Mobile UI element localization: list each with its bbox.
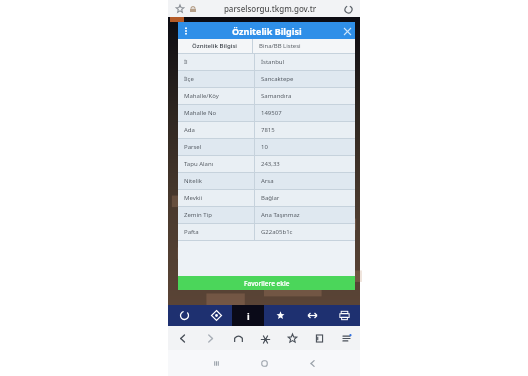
button[interactable]: Tabs — [306, 326, 333, 350]
staticText: Favorilere ekle — [244, 279, 290, 288]
button[interactable]: Menu — [333, 326, 360, 350]
button[interactable]: Bookmarks — [279, 326, 306, 350]
button[interactable]: Site info — [187, 3, 199, 15]
button[interactable]: İlçe — [178, 71, 355, 87]
staticText: Samandıra — [261, 92, 292, 100]
button[interactable]: Bookmark — [173, 2, 187, 16]
button[interactable]: Reload — [341, 2, 355, 16]
button[interactable]: Recents — [192, 350, 240, 376]
button[interactable]: İl — [178, 54, 355, 70]
button[interactable]: Favorites — [264, 305, 296, 326]
staticText: İstanbul — [261, 58, 285, 66]
staticText: i — [247, 310, 250, 322]
staticText: Pafta — [184, 228, 199, 236]
staticText: İl — [184, 58, 188, 66]
staticText: G22a05b1c — [261, 228, 293, 236]
staticText: 149507 — [261, 109, 282, 117]
button[interactable]: parselsorgu.tkgm.gov.tr — [199, 3, 341, 14]
staticText: 243,33 — [261, 160, 280, 168]
staticText: Parsel — [184, 143, 202, 151]
button[interactable]: Parsel — [178, 139, 355, 155]
button[interactable]: Nitelik — [178, 173, 355, 189]
staticText: Arsa — [261, 177, 274, 185]
button[interactable]: Bina/BB Listesi — [253, 39, 355, 53]
button[interactable]: Close — [339, 23, 355, 39]
staticText: Sancaktepe — [261, 75, 294, 83]
staticText: İlçe — [184, 75, 194, 83]
button[interactable]: Extensions — [252, 326, 279, 350]
button[interactable]: Öznitelik Bilgisi — [178, 39, 252, 53]
button[interactable]: Refresh — [168, 305, 200, 326]
staticText: Ada — [184, 126, 195, 134]
button[interactable]: Info — [232, 305, 264, 326]
staticText: Mahalle No — [184, 109, 217, 117]
staticText: Zemin Tip — [184, 211, 212, 219]
staticText: Ana Taşınmaz — [261, 211, 300, 219]
button[interactable]: Tapu Alanı — [178, 156, 355, 172]
staticText: Öznitelik Bilgisi — [192, 42, 238, 50]
staticText: Nitelik — [184, 177, 202, 185]
button[interactable]: Print — [328, 305, 360, 326]
button[interactable]: More options — [178, 23, 194, 39]
button[interactable]: Mevkii — [178, 190, 355, 206]
button[interactable]: Measure — [296, 305, 328, 326]
staticText: 7815 — [261, 126, 275, 134]
button[interactable]: Locate — [200, 305, 232, 326]
button[interactable]: Home — [240, 350, 288, 376]
button[interactable]: Mahalle No — [178, 105, 355, 121]
button[interactable]: Favorilere ekle — [178, 276, 355, 290]
button[interactable]: Zemin Tip — [178, 207, 355, 223]
button[interactable]: Back — [288, 350, 336, 376]
button[interactable]: Home — [224, 326, 252, 350]
button[interactable]: Ada — [178, 122, 355, 138]
button[interactable]: Pafta — [178, 224, 355, 240]
button[interactable]: Mahalle/Köy — [178, 88, 355, 104]
staticText: Mevkii — [184, 194, 203, 202]
staticText: Bina/BB Listesi — [259, 42, 301, 50]
button[interactable]: Forward — [196, 326, 224, 350]
button[interactable]: Back — [168, 326, 196, 350]
staticText: Mahalle/Köy — [184, 92, 219, 100]
staticText: Öznitelik Bilgisi — [232, 25, 302, 37]
staticText: Tapu Alanı — [184, 160, 214, 168]
staticText: 10 — [261, 143, 268, 151]
staticText: Bağlar — [261, 194, 280, 202]
